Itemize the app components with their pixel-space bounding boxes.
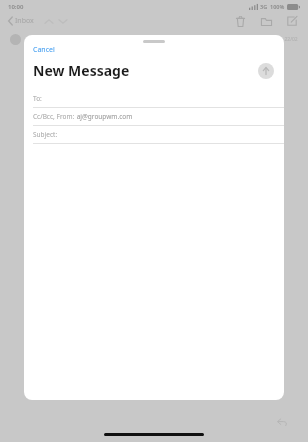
- button[interactable]: Reply: [274, 414, 290, 430]
- button[interactable]: Cc/Bcc, From:: [24, 108, 284, 126]
- button[interactable]: Delete: [232, 13, 248, 29]
- staticText: Cc/Bcc, From:: [33, 112, 75, 121]
- staticText: Subject:: [33, 130, 58, 139]
- button[interactable]: Inbox: [6, 15, 36, 27]
- staticText: 100%: [270, 3, 285, 10]
- staticText: 10:00: [8, 3, 24, 11]
- staticText: Inbox: [15, 16, 34, 26]
- staticText: Cancel: [33, 45, 55, 55]
- button[interactable]: Cancel: [31, 44, 57, 56]
- button[interactable]: Move to folder: [258, 13, 274, 29]
- staticText: New Message: [33, 61, 130, 80]
- button[interactable]: Compose: [284, 13, 300, 29]
- staticText: To:: [33, 94, 42, 103]
- staticText: 10:07, 22/02: [269, 36, 298, 43]
- staticText: aj@groupwm.com: [75, 112, 133, 121]
- button[interactable]: To:: [24, 90, 284, 108]
- button[interactable]: Subject:: [24, 126, 284, 144]
- staticText: 3G: [260, 3, 268, 10]
- staticText: Zac Taylor: [26, 35, 56, 43]
- button[interactable]: Send: [258, 63, 274, 79]
